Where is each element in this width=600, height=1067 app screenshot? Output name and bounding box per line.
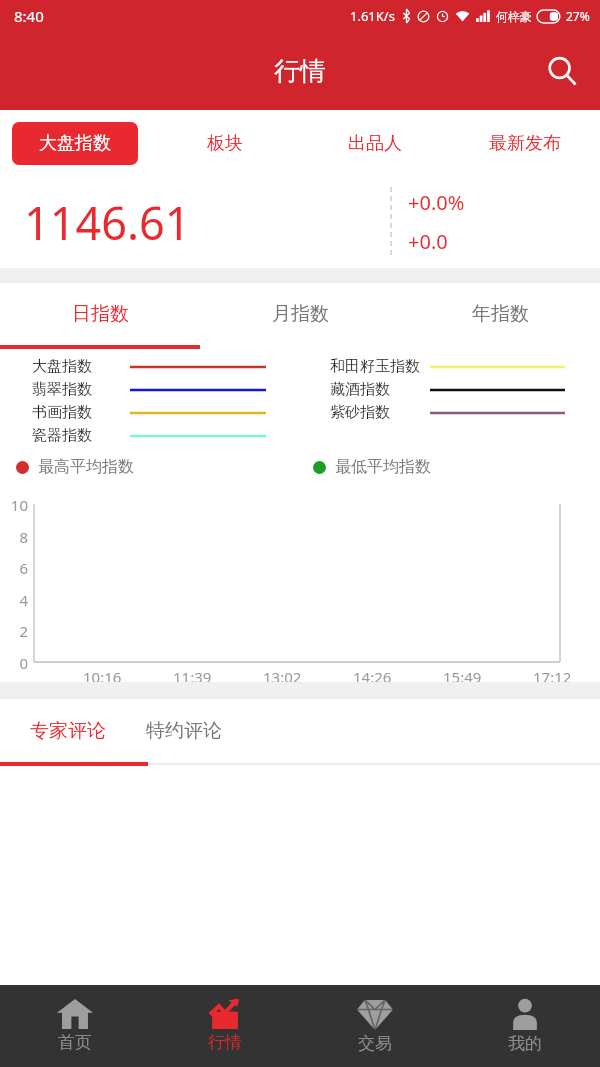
button[interactable]: 专家评论 [30, 699, 106, 762]
staticText: 最新发布 [489, 132, 561, 155]
staticText: 交易 [358, 1033, 392, 1054]
staticText: 紫砂指数 [330, 403, 430, 422]
staticText: 2 [4, 621, 28, 641]
staticText: 4 [4, 590, 28, 610]
staticText: 大盘指数 [39, 132, 111, 155]
staticText: 1.61K/s [350, 7, 395, 25]
button[interactable]: Search [538, 47, 586, 95]
staticText: 翡翠指数 [32, 380, 130, 399]
staticText: 10:16 [83, 667, 122, 682]
button[interactable]: 特约评论 [146, 699, 222, 762]
staticText: 年指数 [472, 302, 529, 326]
button[interactable]: 日指数 [0, 283, 200, 345]
staticText: +0.0% [408, 189, 465, 216]
staticText: 我的 [508, 1033, 542, 1054]
staticText: 书画指数 [32, 403, 130, 422]
staticText: 和田籽玉指数 [330, 357, 430, 376]
staticText: 14:26 [353, 667, 392, 682]
button[interactable]: 大盘指数 [12, 122, 138, 165]
staticText: 何梓豪 [496, 9, 532, 24]
button[interactable]: 出品人 [300, 122, 450, 165]
staticText: 专家评论 [30, 719, 106, 743]
staticText: 15:49 [443, 667, 482, 682]
staticText: 最低平均指数 [335, 457, 431, 477]
button[interactable]: 交易 [300, 985, 450, 1067]
staticText: 8 [4, 527, 28, 547]
staticText: 藏酒指数 [330, 380, 430, 399]
staticText: 1146.61 [24, 192, 191, 253]
staticText: 瓷器指数 [32, 426, 130, 445]
staticText: 大盘指数 [32, 357, 130, 376]
staticText: 行情 [274, 55, 326, 88]
staticText: 特约评论 [146, 719, 222, 743]
staticText: 板块 [207, 132, 243, 155]
button[interactable]: 最新发布 [450, 122, 600, 165]
button[interactable]: 我的 [450, 985, 600, 1067]
button[interactable]: 板块 [150, 122, 300, 165]
staticText: 13:02 [263, 667, 302, 682]
staticText: 10 [4, 495, 28, 515]
staticText: 首页 [58, 1032, 92, 1053]
staticText: 0 [4, 653, 28, 673]
staticText: 月指数 [272, 302, 329, 326]
button[interactable]: 月指数 [200, 283, 400, 345]
staticText: +0.0 [408, 228, 448, 255]
staticText: 行情 [208, 1032, 242, 1053]
staticText: 11:39 [173, 667, 212, 682]
staticText: 27% [566, 8, 590, 24]
staticText: 最高平均指数 [38, 457, 134, 477]
button[interactable]: 年指数 [400, 283, 600, 345]
staticText: 8:40 [14, 6, 44, 26]
button[interactable]: 首页 [0, 985, 150, 1067]
staticText: 日指数 [72, 302, 129, 326]
staticText: 6 [4, 558, 28, 578]
staticText: 17:12 [533, 667, 572, 682]
button[interactable]: 行情 [150, 985, 300, 1067]
staticText: 出品人 [348, 132, 402, 155]
